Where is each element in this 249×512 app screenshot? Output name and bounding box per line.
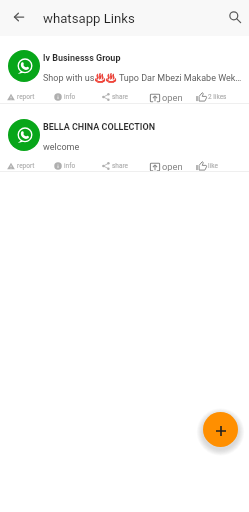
staticText: whatsapp Links bbox=[43, 11, 135, 26]
button[interactable]: share bbox=[100, 93, 148, 101]
staticText: Shop with us♨♨ Tupo Dar Mbezi Makabe Wek… bbox=[43, 73, 242, 84]
button[interactable]: 2 likes bbox=[196, 91, 244, 103]
staticText: BELLA CHINA COLLECTION bbox=[43, 122, 156, 133]
button[interactable]: Search bbox=[223, 5, 247, 29]
staticText: like bbox=[208, 162, 218, 170]
button[interactable]: BELLA CHINA COLLECTION bbox=[0, 104, 249, 172]
button[interactable]: report bbox=[5, 93, 52, 101]
button[interactable]: lv Businesss Group bbox=[0, 36, 249, 104]
button[interactable]: report bbox=[5, 162, 52, 170]
button[interactable]: info bbox=[52, 93, 100, 101]
staticText: share bbox=[112, 162, 129, 170]
staticText: welcome bbox=[43, 142, 80, 153]
staticText: report bbox=[17, 162, 35, 170]
staticText: report bbox=[17, 93, 35, 101]
staticText: open bbox=[162, 92, 183, 103]
staticText: open bbox=[162, 161, 183, 172]
staticText: info bbox=[64, 162, 76, 170]
button[interactable]: open bbox=[148, 92, 196, 103]
button[interactable]: open bbox=[148, 161, 196, 172]
staticText: lv Businesss Group bbox=[43, 53, 121, 64]
button[interactable]: info bbox=[52, 162, 100, 170]
button[interactable]: share bbox=[100, 162, 148, 170]
button[interactable]: Back bbox=[7, 5, 31, 29]
staticText: 2 likes bbox=[208, 93, 227, 101]
staticText: info bbox=[64, 93, 76, 101]
staticText: share bbox=[112, 93, 129, 101]
button[interactable]: Add bbox=[203, 412, 238, 447]
button[interactable]: like bbox=[196, 160, 244, 172]
